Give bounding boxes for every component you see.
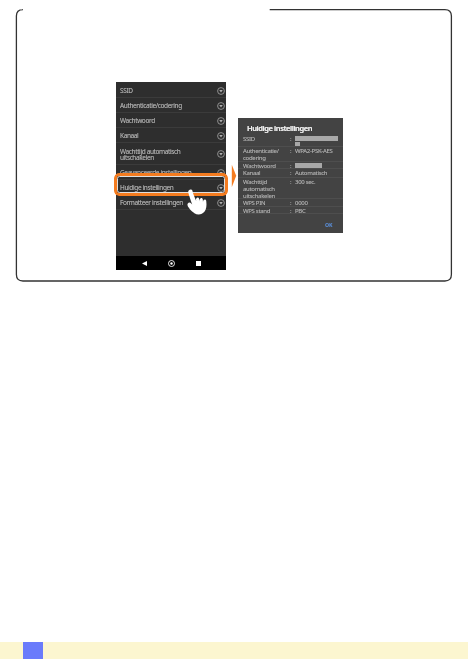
staticText: Authenticatie/codering xyxy=(120,101,217,110)
staticText: WPS stand xyxy=(243,207,290,214)
button[interactable]: Formatteer instellingen xyxy=(116,195,226,210)
staticText: Huidige instellingen xyxy=(120,183,217,192)
button[interactable]: Home xyxy=(165,256,177,270)
staticText: SSID xyxy=(243,135,290,143)
staticText: Wachtwoord xyxy=(120,116,217,125)
staticText: : xyxy=(290,162,295,169)
staticText: Geavanceerde instellingen xyxy=(120,168,217,177)
staticText: Formatteer instellingen xyxy=(120,198,217,207)
button[interactable]: Huidige instellingen xyxy=(116,180,226,195)
staticText: Kanaal xyxy=(243,169,290,177)
staticText: 300 sec. xyxy=(295,178,316,186)
staticText: : xyxy=(290,135,295,143)
button[interactable]: Wachtwoord xyxy=(116,113,226,128)
staticText: : xyxy=(290,199,295,207)
staticText: Automatisch xyxy=(295,169,328,177)
staticText: WPA2-PSK-AES xyxy=(295,147,333,155)
button[interactable]: OK xyxy=(323,219,335,230)
button[interactable]: Recent apps xyxy=(192,256,204,270)
staticText: Kanaal xyxy=(120,131,217,140)
staticText: : xyxy=(290,169,295,177)
staticText: : xyxy=(290,178,295,186)
staticText: OK xyxy=(325,221,333,228)
staticText: : xyxy=(290,147,295,155)
staticText: : xyxy=(290,207,295,214)
staticText: Wachtwoord xyxy=(243,162,290,169)
staticText: Authenticatie/ codering xyxy=(243,147,290,162)
staticText: Wachttijd automatisch uitschakelen xyxy=(243,178,290,199)
button[interactable]: Back xyxy=(138,256,150,270)
staticText: Huidige instellingen xyxy=(247,123,313,133)
staticText: SSID xyxy=(120,86,217,95)
button[interactable]: Authenticatie/codering xyxy=(116,98,226,113)
button[interactable]: Huidige instellingen xyxy=(114,173,228,196)
staticText: WPS PIN xyxy=(243,199,290,207)
button[interactable]: SSID xyxy=(116,83,226,98)
staticText: 0000 xyxy=(295,199,308,207)
staticText: Wachttijd automatisch uitschakelen xyxy=(120,147,217,162)
button[interactable]: Kanaal xyxy=(116,128,226,143)
staticText: PBC xyxy=(295,207,306,214)
button[interactable]: Geavanceerde instellingen xyxy=(116,165,226,180)
button[interactable]: Wachttijd automatisch uitschakelen xyxy=(116,143,226,165)
